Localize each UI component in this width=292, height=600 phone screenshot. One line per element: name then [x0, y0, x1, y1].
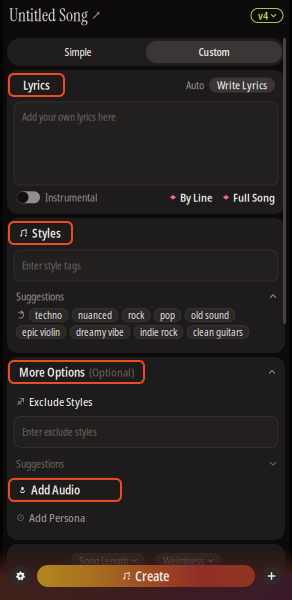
- button[interactable]: Settings: [11, 566, 30, 585]
- staticText: rock: [128, 308, 144, 322]
- button[interactable]: Instrumental: [17, 190, 97, 204]
- staticText: Lyrics: [23, 77, 50, 93]
- button[interactable]: nuanced: [72, 308, 118, 321]
- staticText: techno: [35, 308, 62, 322]
- button[interactable]: Create: [37, 565, 255, 587]
- staticText: Add your own lyrics here: [22, 110, 116, 124]
- button[interactable]: epic violin: [16, 325, 66, 338]
- staticText: Full Song: [233, 190, 275, 205]
- staticText: Custom: [198, 45, 229, 59]
- button[interactable]: Refresh suggestions: [16, 308, 25, 321]
- staticText: Write Lyrics: [217, 78, 267, 92]
- staticText: Add Persona: [29, 510, 85, 525]
- staticText: Instrumental: [45, 190, 97, 204]
- staticText: (Optional): [89, 364, 134, 380]
- staticText: Enter exclude styles: [22, 425, 97, 439]
- staticText: nuanced: [78, 308, 112, 322]
- staticText: dreamy vibe: [76, 325, 124, 339]
- button[interactable]: Write Lyrics: [209, 77, 275, 92]
- button[interactable]: Simple: [10, 41, 146, 63]
- staticText: Song Length: [79, 553, 128, 568]
- button[interactable]: indie rock: [134, 325, 183, 338]
- button[interactable]: Full Song: [212, 190, 275, 205]
- staticText: Suggestions: [16, 456, 64, 471]
- button[interactable]: Add Audio: [9, 479, 121, 501]
- staticText: pop: [160, 308, 175, 322]
- button[interactable]: old sound: [185, 308, 235, 321]
- staticText: Styles: [32, 225, 61, 241]
- button[interactable]: Lyrics: [9, 74, 64, 96]
- button[interactable]: dreamy vibe: [70, 325, 130, 338]
- staticText: Simple: [64, 45, 91, 59]
- button[interactable]: Styles: [9, 222, 72, 244]
- button[interactable]: techno: [29, 308, 68, 321]
- button[interactable]: Untitled Song: [9, 0, 100, 32]
- staticText: By Line: [180, 190, 212, 205]
- button[interactable]: v4: [251, 8, 283, 22]
- button[interactable]: More Options: [9, 361, 144, 383]
- button[interactable]: Auto: [181, 77, 209, 92]
- staticText: Add Audio: [31, 482, 80, 498]
- staticText: Suggestions: [16, 289, 64, 303]
- button[interactable]: By Line: [170, 190, 212, 205]
- staticText: Untitled Song: [9, 5, 88, 26]
- staticText: More Options: [19, 364, 85, 380]
- button[interactable]: Custom: [146, 41, 282, 63]
- staticText: Enter style tags: [22, 259, 81, 272]
- staticText: old sound: [191, 308, 229, 322]
- staticText: Auto: [186, 78, 204, 92]
- staticText: Exclude Styles: [29, 394, 92, 409]
- staticText: Weirdness: [163, 553, 204, 568]
- staticText: v4: [258, 8, 268, 23]
- button[interactable]: rock: [122, 308, 150, 321]
- button[interactable]: pop: [154, 308, 181, 321]
- staticText: epic violin: [22, 325, 60, 339]
- button[interactable]: clean guitars: [187, 325, 249, 338]
- staticText: Create: [135, 567, 169, 585]
- button[interactable]: Add: [262, 566, 281, 585]
- staticText: indie rock: [140, 325, 177, 339]
- staticText: clean guitars: [193, 325, 243, 339]
